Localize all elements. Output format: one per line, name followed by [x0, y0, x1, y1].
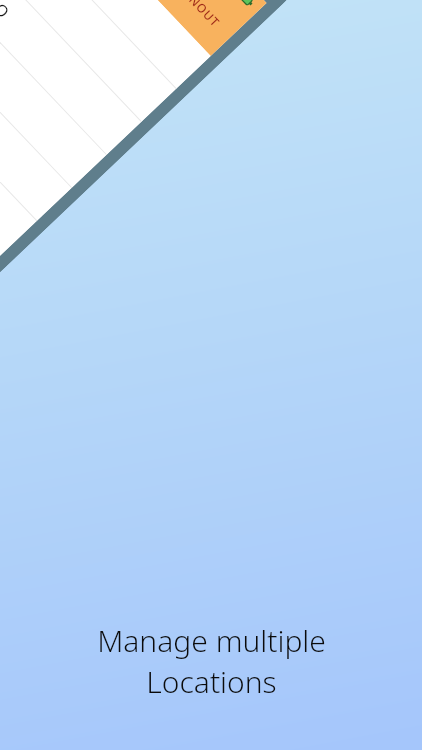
staticText: Manage multiple [97, 620, 326, 661]
button[interactable]: Garden Deli [0, 0, 176, 122]
button[interactable]: Knights BBQ [0, 0, 141, 155]
staticText: Locations [146, 661, 277, 702]
staticText: SIGNOUT [171, 0, 224, 31]
button[interactable]: SIGNOUT [160, 0, 235, 41]
button[interactable]: Pizza Mania [0, 0, 211, 89]
staticText: Knights BBQ [0, 0, 15, 23]
button[interactable]: Fresh Market [0, 0, 71, 221]
button[interactable]: Wok Ramen [0, 0, 106, 188]
